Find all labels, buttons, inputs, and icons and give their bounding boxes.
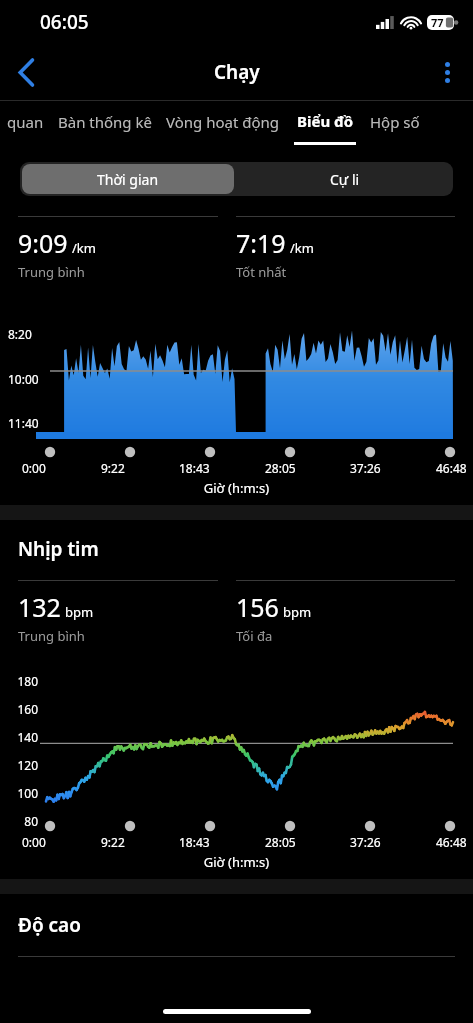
staticText: 156	[236, 590, 279, 624]
staticText: Tốt nhất	[236, 263, 287, 281]
staticText: 7:19	[236, 226, 286, 260]
staticText: Hộp số	[370, 112, 420, 132]
staticText: 18:43	[179, 460, 210, 476]
staticText: 9:22	[101, 834, 125, 850]
staticText: Tối đa	[236, 627, 273, 645]
staticText: 28:05	[265, 834, 296, 850]
button[interactable]: Bàn thống kê	[58, 101, 152, 149]
staticText: 120	[0, 757, 38, 773]
staticText: 77	[431, 15, 444, 30]
staticText: 8:20	[8, 326, 32, 342]
button[interactable]: Biểu đồ	[294, 101, 356, 149]
staticText: Độ cao	[18, 912, 81, 938]
staticText: 10:00	[8, 371, 39, 387]
staticText: Giờ (h:m:s)	[0, 853, 473, 871]
staticText: 132	[18, 590, 61, 624]
staticText: 06:05	[40, 9, 89, 35]
staticText: 9:09	[18, 226, 68, 260]
staticText: Giờ (h:m:s)	[0, 479, 473, 497]
staticText: 100	[0, 785, 38, 801]
staticText: Bàn thống kê	[58, 112, 152, 132]
staticText: Trung bình	[18, 263, 85, 281]
staticText: 0:00	[22, 834, 46, 850]
staticText: Nhịp tim	[18, 536, 99, 562]
button[interactable]: More options	[421, 46, 473, 98]
button[interactable]: Hộp số	[370, 101, 420, 149]
staticText: 11:40	[8, 415, 39, 431]
staticText: 37:26	[350, 460, 381, 476]
staticText: Biểu đồ	[297, 111, 354, 131]
staticText: 28:05	[265, 460, 296, 476]
staticText: bpm	[283, 603, 312, 621]
staticText: Thời gian	[97, 170, 159, 189]
staticText: bpm	[65, 603, 94, 621]
staticText: /km	[72, 239, 96, 257]
staticText: quan	[7, 112, 44, 132]
staticText: 140	[0, 729, 38, 745]
button[interactable]: Vòng hoạt động	[166, 101, 280, 149]
button[interactable]: Back	[0, 46, 52, 98]
staticText: Chạy	[214, 59, 260, 85]
staticText: 160	[0, 701, 38, 717]
staticText: 0:00	[22, 460, 46, 476]
staticText: 46:48	[436, 460, 467, 476]
staticText: /km	[290, 239, 314, 257]
staticText: 18:43	[179, 834, 210, 850]
staticText: Cự li	[330, 170, 360, 189]
staticText: 46:48	[436, 834, 467, 850]
staticText: Trung bình	[18, 627, 85, 645]
staticText: 9:22	[101, 460, 125, 476]
button[interactable]: Cự li	[236, 162, 453, 196]
staticText: 80	[0, 813, 38, 829]
staticText: Vòng hoạt động	[166, 112, 280, 132]
button[interactable]: quan	[7, 101, 44, 149]
staticText: 37:26	[350, 834, 381, 850]
staticText: 180	[0, 673, 38, 689]
button[interactable]: Thời gian	[22, 164, 234, 194]
